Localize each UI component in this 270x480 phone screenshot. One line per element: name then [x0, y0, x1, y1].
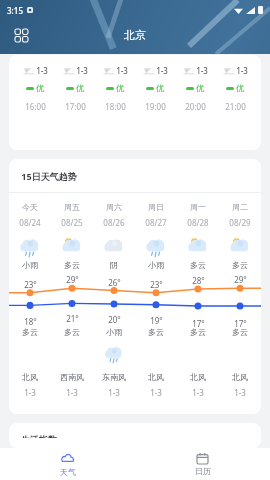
staticText: 23° — [150, 279, 163, 290]
staticText: 18:00 — [105, 101, 126, 112]
staticText: 26° — [108, 277, 121, 288]
staticText: 小雨 — [106, 327, 122, 337]
staticText: 17° — [192, 318, 205, 329]
staticText: 东南风 — [102, 372, 126, 382]
staticText: 1-3 — [234, 387, 246, 398]
staticText: 北京 — [124, 28, 146, 42]
staticText: 周一 — [190, 202, 206, 212]
staticText: 周六 — [106, 202, 122, 212]
staticText: 08/26 — [103, 217, 125, 228]
staticText: 1-3 — [24, 387, 36, 398]
staticText: 29° — [66, 274, 79, 285]
staticText: 08/27 — [145, 217, 167, 228]
staticText: 北风 — [22, 372, 38, 382]
button[interactable]: 15日天气趋势 — [9, 159, 261, 192]
staticText: 北风 — [232, 372, 248, 382]
staticText: 北风 — [190, 372, 206, 382]
staticText: 1-3 — [66, 387, 78, 398]
staticText: 29° — [234, 274, 247, 285]
staticText: 小雨 — [148, 260, 164, 270]
button[interactable]: 日历 — [135, 448, 270, 480]
staticText: 多云 — [232, 260, 248, 270]
button[interactable]: 天气 — [0, 448, 135, 480]
staticText: 周五 — [64, 202, 80, 212]
staticText: 多云 — [232, 327, 248, 337]
button[interactable]: 城市列表 — [8, 22, 34, 48]
staticText: 多云 — [190, 327, 206, 337]
staticText: 28° — [192, 275, 205, 286]
staticText: 17:00 — [65, 101, 86, 112]
staticText: 优 — [236, 83, 244, 93]
staticText: 小雨 — [22, 260, 38, 270]
staticText: 18° — [24, 316, 37, 327]
staticText: 1-3 — [156, 65, 168, 76]
staticText: 1-3 — [36, 65, 48, 76]
staticText: 阴 — [110, 260, 118, 270]
staticText: 日历 — [195, 466, 211, 476]
staticText: 19° — [150, 315, 163, 326]
staticText: 17° — [234, 318, 247, 329]
staticText: 1-3 — [236, 65, 248, 76]
staticText: 23° — [24, 279, 37, 290]
staticText: 多云 — [190, 260, 206, 270]
staticText: 生活指数 — [21, 434, 57, 438]
staticText: 08/25 — [61, 217, 83, 228]
staticText: 08/24 — [19, 217, 41, 228]
staticText: 周二 — [232, 202, 248, 212]
staticText: 优 — [36, 83, 44, 93]
staticText: 优 — [76, 83, 84, 93]
staticText: 1-3 — [196, 65, 208, 76]
staticText: 20° — [108, 314, 121, 325]
staticText: 08/29 — [229, 217, 251, 228]
staticText: 16:00 — [25, 101, 46, 112]
staticText: 20:00 — [185, 101, 206, 112]
staticText: 1-3 — [150, 387, 162, 398]
staticText: 1-3 — [76, 65, 88, 76]
staticText: 1-3 — [192, 387, 204, 398]
button[interactable]: 1-3 — [9, 55, 261, 150]
staticText: 1-3 — [116, 65, 128, 76]
staticText: 周日 — [148, 202, 164, 212]
staticText: 今天 — [22, 202, 38, 212]
button[interactable]: 生活指数 — [9, 423, 261, 448]
staticText: 21:00 — [225, 101, 246, 112]
staticText: 优 — [156, 83, 164, 93]
staticText: 多云 — [64, 327, 80, 337]
staticText: 1-3 — [108, 387, 120, 398]
staticText: 多云 — [64, 260, 80, 270]
staticText: 19:00 — [145, 101, 166, 112]
staticText: 北风 — [148, 372, 164, 382]
staticText: 优 — [196, 83, 204, 93]
staticText: 15日天气趋势 — [21, 170, 77, 182]
staticText: 多云 — [148, 327, 164, 337]
staticText: 3:15 — [7, 5, 23, 16]
staticText: 天气 — [60, 467, 76, 477]
staticText: 西南风 — [60, 372, 84, 382]
staticText: 多云 — [22, 327, 38, 337]
staticText: 21° — [66, 313, 79, 324]
staticText: 08/28 — [187, 217, 209, 228]
staticText: 优 — [116, 83, 124, 93]
